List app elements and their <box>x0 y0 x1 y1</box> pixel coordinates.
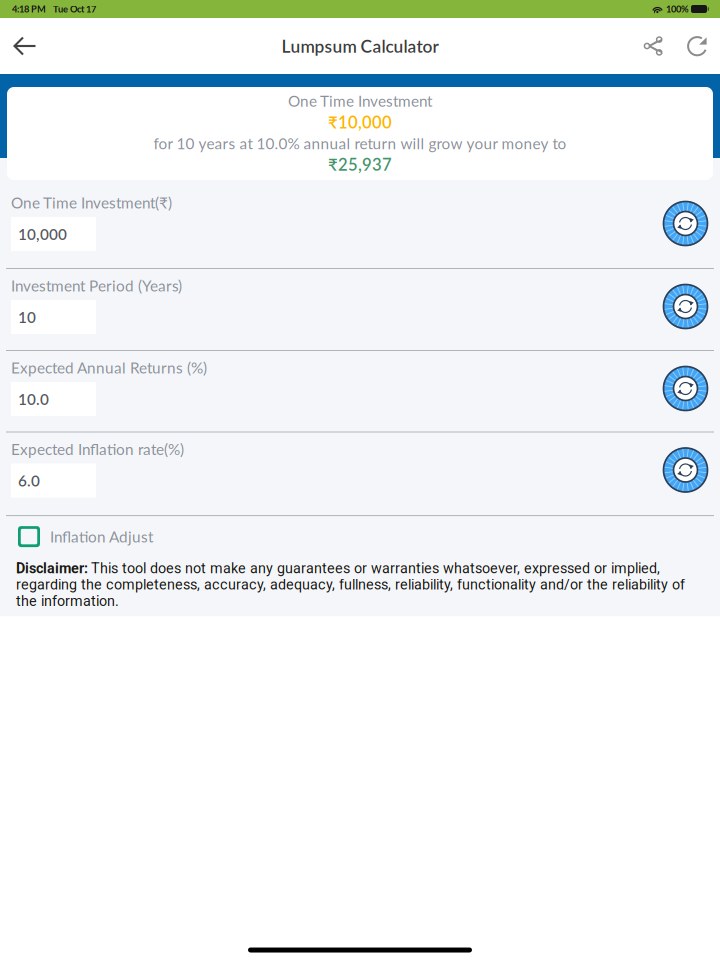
staticText: ₹25,937 <box>328 154 392 174</box>
button[interactable]: Inflation Adjust <box>0 516 720 557</box>
staticText: One Time Investment <box>288 92 432 110</box>
button[interactable]: Adjust Investment Period (Years) <box>663 284 708 329</box>
staticText: Expected Inflation rate(%) <box>11 440 184 458</box>
button[interactable]: Adjust One Time Investment(₹) <box>663 201 708 246</box>
button[interactable]: Adjust Expected Annual Returns (%) <box>663 366 708 411</box>
button[interactable]: Refresh <box>676 18 720 74</box>
button[interactable]: Back <box>0 18 50 74</box>
staticText: 10,000 <box>18 225 67 243</box>
staticText: Lumpsum Calculator <box>281 36 438 56</box>
staticText: Expected Annual Returns (%) <box>11 358 207 377</box>
staticText: One Time Investment(₹) <box>11 193 172 212</box>
staticText: for 10 years at 10.0% annual return will… <box>153 134 566 152</box>
staticText: ₹10,000 <box>328 112 392 132</box>
staticText: 4:18 PM <box>12 3 46 15</box>
staticText: 100% <box>666 3 689 15</box>
staticText: 6.0 <box>18 471 40 490</box>
button[interactable]: Share <box>630 18 676 74</box>
staticText: Tue Oct 17 <box>53 3 96 15</box>
staticText: Inflation Adjust <box>50 527 153 546</box>
staticText: Disclaimer: This tool does not make any … <box>16 560 685 609</box>
staticText: 10 <box>18 308 36 326</box>
button[interactable]: Adjust Expected Inflation rate(%) <box>663 447 708 492</box>
staticText: 10.0 <box>18 390 49 408</box>
staticText: Investment Period (Years) <box>11 276 182 295</box>
